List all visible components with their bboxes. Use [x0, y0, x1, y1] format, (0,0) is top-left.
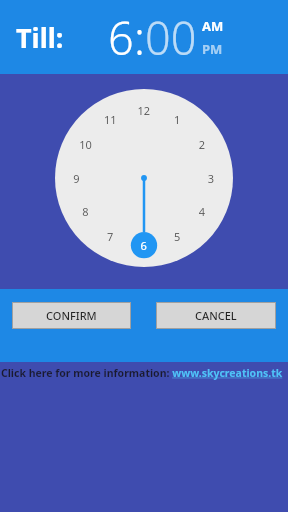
- staticText: PM: [202, 40, 223, 58]
- button[interactable]: 6: [108, 7, 134, 68]
- staticText: CANCEL: [195, 308, 237, 323]
- staticText: Till:: [16, 19, 64, 56]
- staticText: :: [134, 7, 145, 68]
- staticText: Click here for more information: www.sky…: [1, 366, 283, 380]
- button[interactable]: PM: [202, 40, 223, 58]
- button[interactable]: CONFIRM: [12, 302, 131, 329]
- button[interactable]: CANCEL: [156, 302, 276, 329]
- button[interactable]: Click here for more information: www.sky…: [0, 362, 288, 384]
- staticText: AM: [202, 17, 224, 35]
- button[interactable]: AM: [202, 17, 224, 35]
- button[interactable]: 00: [145, 7, 197, 68]
- button[interactable]: Clock face, hour 6 selected: [0, 74, 288, 289]
- staticText: CONFIRM: [46, 308, 97, 323]
